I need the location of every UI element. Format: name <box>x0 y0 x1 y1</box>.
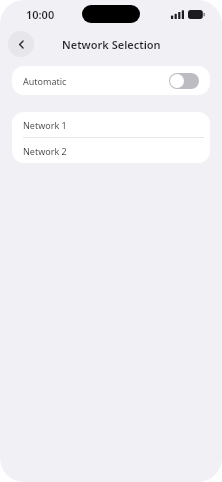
button[interactable]: Automatic <box>12 66 210 95</box>
staticText: Network 1 <box>23 119 67 131</box>
staticText: Network Selection <box>62 37 161 52</box>
button[interactable]: Automatic toggle <box>169 73 199 89</box>
staticText: 10:00 <box>26 7 55 22</box>
button[interactable]: Back <box>8 31 34 57</box>
staticText: Automatic <box>23 75 169 87</box>
button[interactable]: Network 1 <box>12 112 210 137</box>
button[interactable]: Network 2 <box>12 138 210 163</box>
staticText: Network 2 <box>23 145 67 157</box>
